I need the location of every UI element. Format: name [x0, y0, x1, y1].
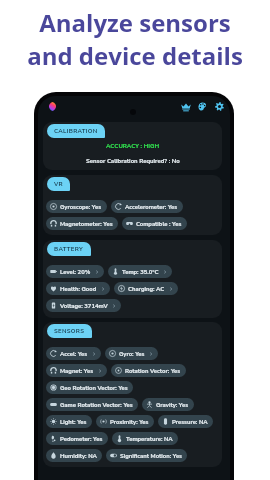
staticText: and device details — [27, 39, 243, 72]
button[interactable]: Compatible : Yes — [122, 217, 187, 230]
button[interactable]: Significant Motion: Yes — [106, 449, 187, 462]
button[interactable]: Proximity: Yes — [96, 415, 154, 428]
staticText: Temperature: NA — [126, 435, 173, 443]
button[interactable]: Voltage: 3714mV — [46, 299, 121, 312]
button[interactable]: Temperature: NA — [112, 432, 178, 445]
staticText: Gravity: Yes — [156, 401, 189, 409]
button[interactable]: Gyro: Yes — [105, 347, 158, 360]
staticText: CALIBRATION — [54, 127, 98, 135]
button[interactable]: Magnetometer: Yes — [46, 217, 118, 230]
staticText: VR — [54, 180, 63, 188]
staticText: Pedometer: Yes — [60, 435, 103, 443]
staticText: Magnet: Yes — [60, 367, 94, 375]
staticText: Analyze sensors — [39, 6, 231, 39]
button[interactable]: Theme — [196, 100, 209, 113]
staticText: Gyroscope: Yes — [60, 203, 102, 211]
button[interactable]: Humidity: NA — [46, 449, 102, 462]
button[interactable]: Magnet: Yes — [46, 364, 107, 377]
button[interactable]: Pressure: NA — [158, 415, 213, 428]
staticText: Health: Good — [60, 285, 97, 293]
button[interactable]: App icon — [48, 102, 57, 111]
button[interactable]: Settings — [213, 100, 226, 113]
button[interactable]: Charging: AC — [114, 282, 178, 295]
staticText: Temp: 35.0°C — [122, 268, 159, 276]
button[interactable]: Gravity: Yes — [142, 398, 194, 411]
button[interactable]: Light: Yes — [46, 415, 92, 428]
staticText: Rotation Vector: Yes — [125, 367, 181, 375]
staticText: Pressure: NA — [172, 418, 208, 426]
button[interactable]: Rotation Vector: Yes — [111, 364, 186, 377]
staticText: Significant Motion: Yes — [120, 452, 182, 460]
staticText: Magnetometer: Yes — [60, 220, 113, 228]
staticText: Charging: AC — [128, 285, 165, 293]
staticText: Proximity: Yes — [110, 418, 149, 426]
staticText: BATTERY — [54, 245, 84, 253]
button[interactable]: Pro — [179, 100, 192, 113]
staticText: Compatible : Yes — [136, 220, 182, 228]
button[interactable]: Temp: 35.0°C — [108, 265, 172, 278]
staticText: Geo Rotation Vector: Yes — [60, 384, 128, 392]
button[interactable]: Health: Good — [46, 282, 110, 295]
staticText: Accel: Yes — [60, 350, 88, 358]
button[interactable]: Gyroscope: Yes — [46, 200, 107, 213]
staticText: Voltage: 3714mV — [60, 302, 108, 310]
staticText: Sensor Calibration Required? : No — [86, 157, 180, 165]
staticText: Level: 20% — [60, 268, 91, 276]
staticText: Game Rotation Vector: Yes — [60, 401, 133, 409]
staticText: SENSORS — [54, 327, 85, 335]
staticText: Accelerometer: Yes — [125, 203, 178, 211]
button[interactable]: Level: 20% — [46, 265, 104, 278]
button[interactable]: Accelerometer: Yes — [111, 200, 183, 213]
staticText: ACCURACY : HIGH — [106, 142, 160, 150]
button[interactable]: Accel: Yes — [46, 347, 101, 360]
staticText: Light: Yes — [60, 418, 87, 426]
staticText: Gyro: Yes — [119, 350, 145, 358]
button[interactable]: Pedometer: Yes — [46, 432, 108, 445]
staticText: Humidity: NA — [60, 452, 97, 460]
button[interactable]: Geo Rotation Vector: Yes — [46, 381, 133, 394]
button[interactable]: Game Rotation Vector: Yes — [46, 398, 138, 411]
